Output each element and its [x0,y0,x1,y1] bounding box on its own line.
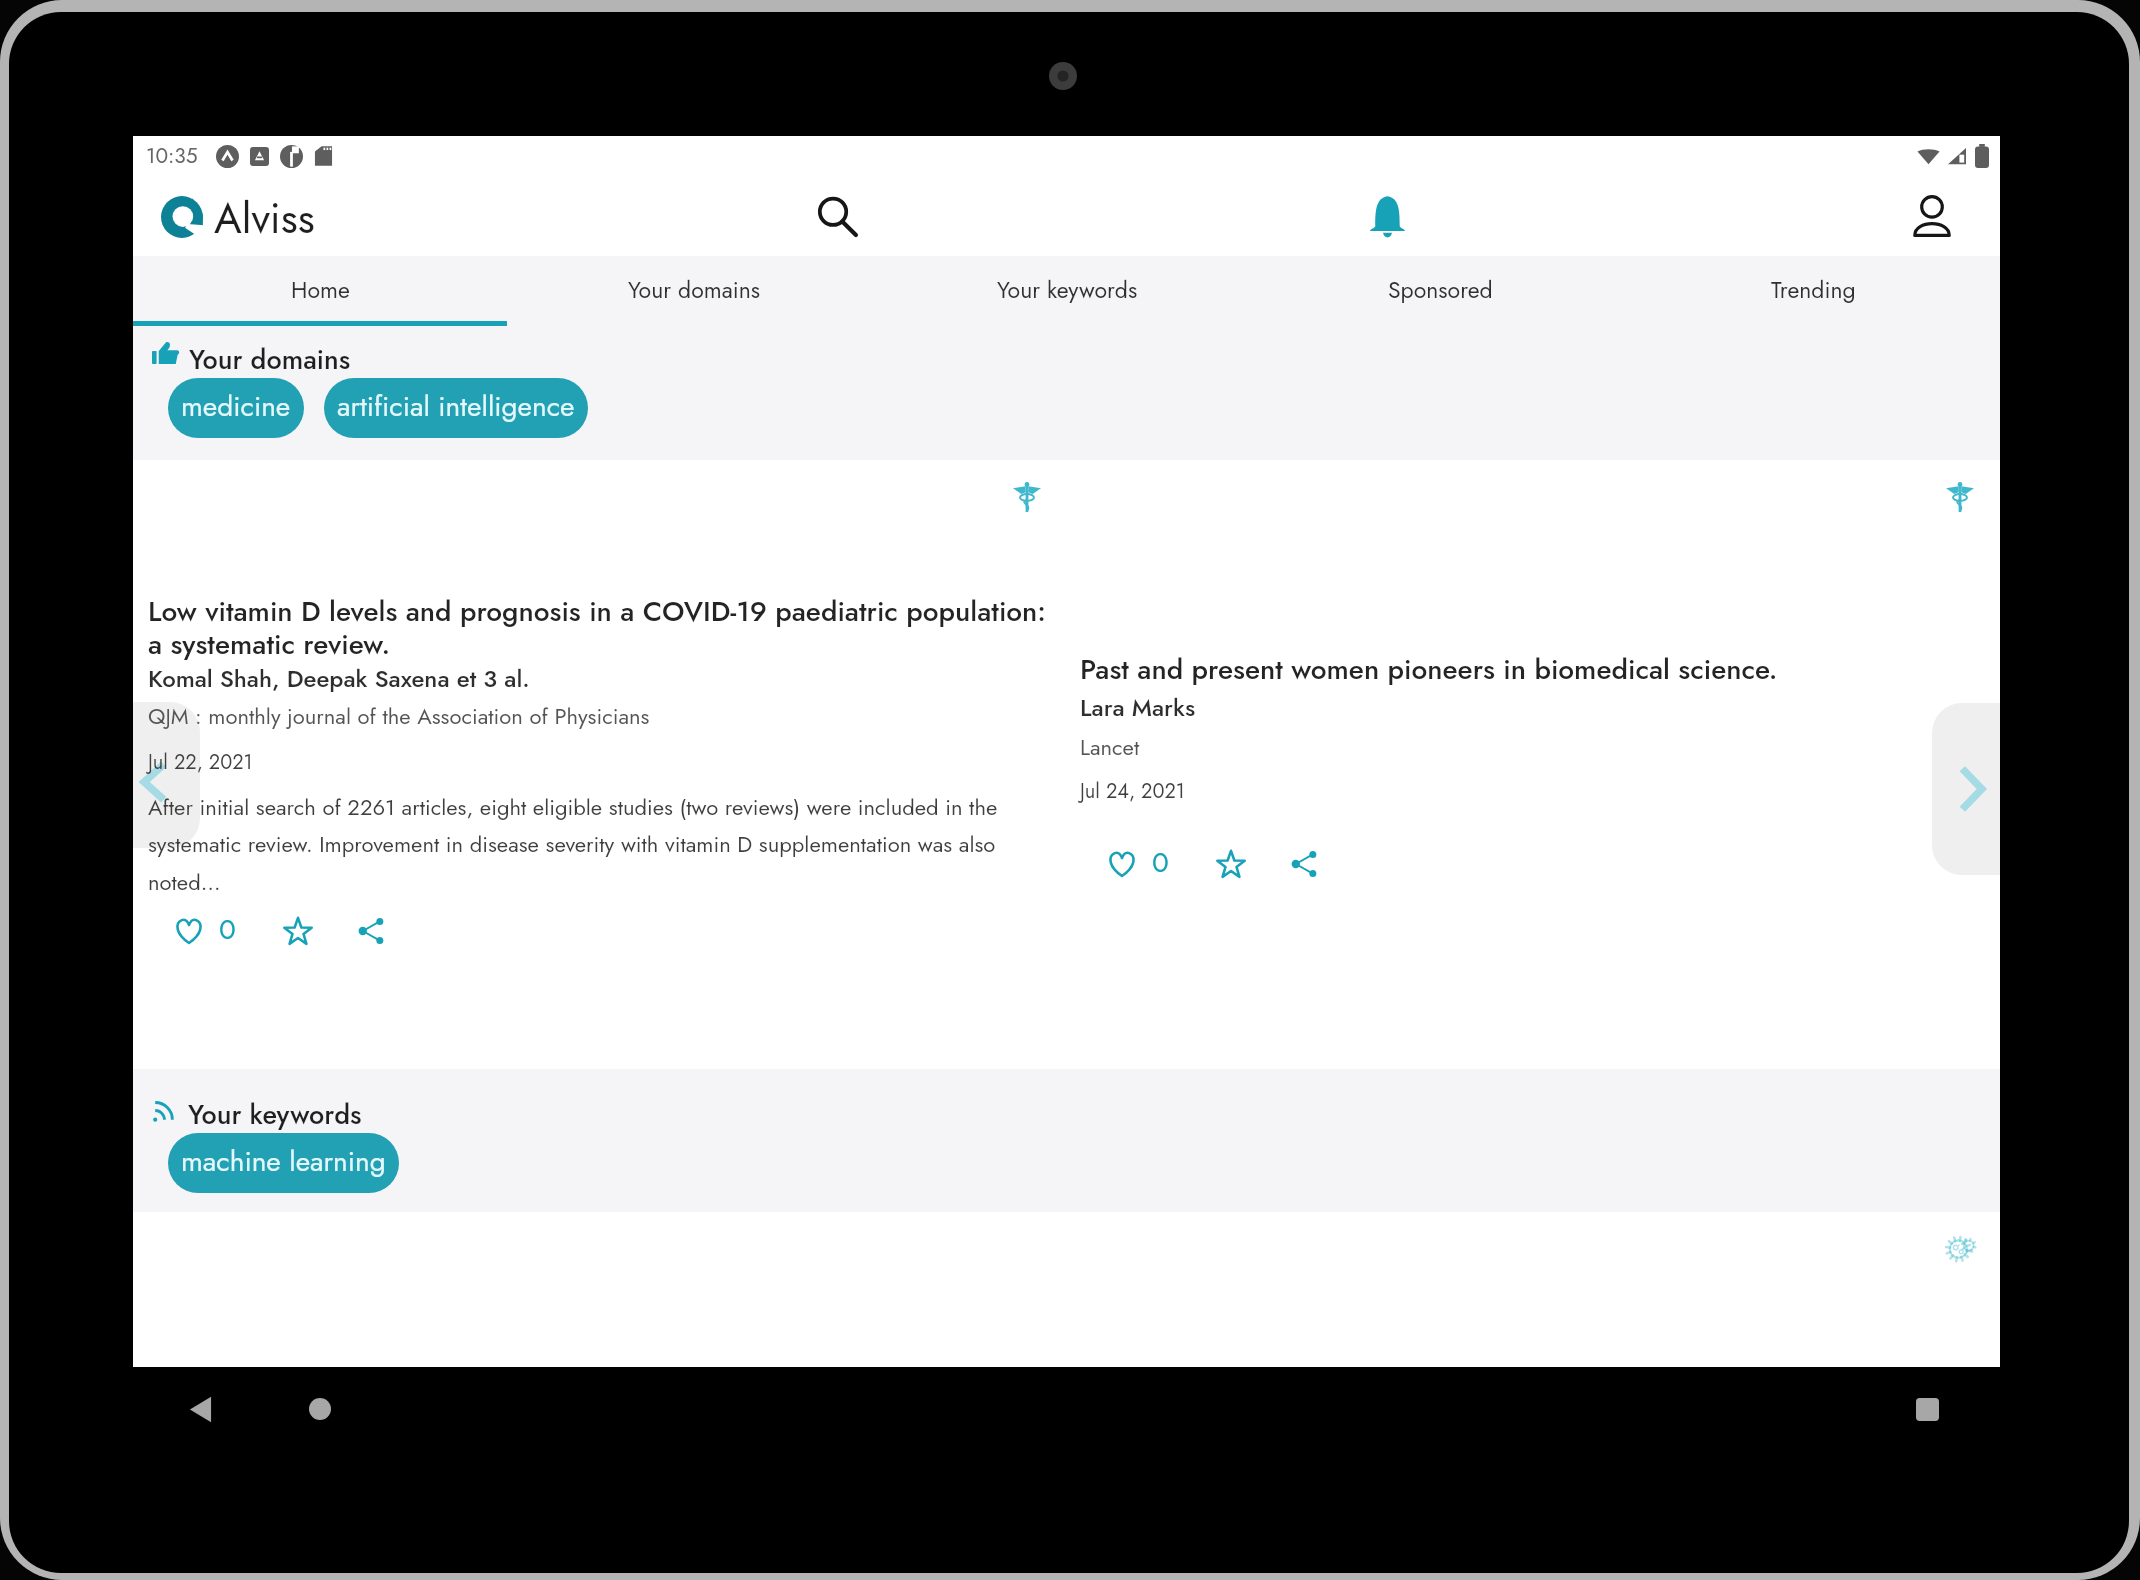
button[interactable]: Back [170,1367,230,1451]
staticText: Home [291,273,350,306]
button[interactable]: Profile [1900,185,1964,249]
button[interactable]: Your domains [507,256,881,326]
staticText: Lancet [1080,731,1140,763]
button[interactable]: artificial intelligence [324,378,588,438]
staticText: Trending [1771,273,1856,306]
staticText: medicine [181,386,291,426]
staticText: Your domains [189,340,351,379]
button[interactable]: Alviss [155,180,321,253]
button[interactable]: Bookmark [280,913,316,949]
button[interactable]: medicine [168,378,304,438]
button[interactable]: Bookmark [1213,846,1249,882]
button[interactable]: Like [1104,846,1140,882]
button[interactable]: machine learning [168,1133,399,1193]
staticText: Your keywords [997,273,1138,306]
staticText: 10:35 [146,141,198,171]
staticText: Low vitamin D levels and prognosis in a … [148,591,1048,665]
button[interactable]: Share [1287,846,1323,882]
button[interactable]: Low vitamin D levels and prognosis in a … [133,460,1066,1069]
button[interactable]: Home [290,1367,350,1451]
button[interactable]: Your keywords [881,256,1254,326]
staticText: Sponsored [1388,273,1493,306]
button[interactable]: Recents [1897,1367,1957,1451]
button[interactable]: Previous [133,702,200,848]
staticText: Lara Marks [1080,690,1196,725]
staticText: After initial search of 2261 articles, e… [148,791,1028,898]
staticText: Your domains [628,273,761,306]
staticText: 0 [1152,842,1169,882]
staticText: Your keywords [188,1095,362,1134]
button[interactable]: Like [171,913,207,949]
staticText: Alviss [214,188,315,249]
button[interactable]: Past and present women pioneers in biome… [1066,460,2000,1069]
staticText: artificial intelligence [337,386,575,426]
button[interactable]: Trending [1627,256,2000,326]
staticText: Komal Shah, Deepak Saxena et 3 al. [148,661,530,696]
staticText: QJM : monthly journal of the Association… [148,700,650,732]
button[interactable]: Notifications [1355,185,1419,249]
staticText: Jul 22, 2021 [148,748,253,777]
staticText: Past and present women pioneers in biome… [1080,649,1960,689]
staticText: Jul 24, 2021 [1080,777,1185,806]
button[interactable]: Home [133,256,507,326]
staticText: 0 [219,909,236,949]
button[interactable]: Sponsored [1254,256,1627,326]
staticText: machine learning [181,1141,386,1181]
button[interactable]: Share [354,913,390,949]
button[interactable]: Search [805,185,869,249]
button[interactable]: Next [1932,703,2000,875]
